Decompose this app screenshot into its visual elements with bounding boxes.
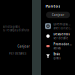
button[interactable]: Envio [41, 51, 75, 61]
staticText: amet consectetur elit [53, 26, 71, 30]
staticText: Canjear [52, 13, 64, 17]
staticText: gratis [53, 56, 60, 60]
staticText: Envio [53, 52, 60, 56]
button[interactable]: Canjear [46, 12, 70, 18]
staticText: Lorem ipsum dolor sit [53, 22, 71, 26]
staticText: activas [53, 46, 60, 50]
staticText: Promociones [53, 42, 71, 46]
staticText: solicita gratis [2, 25, 19, 28]
staticText: Descuentos [53, 32, 69, 36]
staticText: tu recarga y disfruta [2, 28, 28, 32]
staticText: ver detalle [53, 36, 68, 40]
button[interactable]: Lorem ipsum dolor sit [41, 21, 75, 31]
staticText: Ver detalles [9, 52, 26, 55]
staticText: Canjear [17, 45, 29, 48]
button[interactable]: Promociones [41, 41, 75, 51]
button[interactable]: Descuentos [41, 31, 75, 41]
staticText: Puntos [45, 3, 60, 9]
